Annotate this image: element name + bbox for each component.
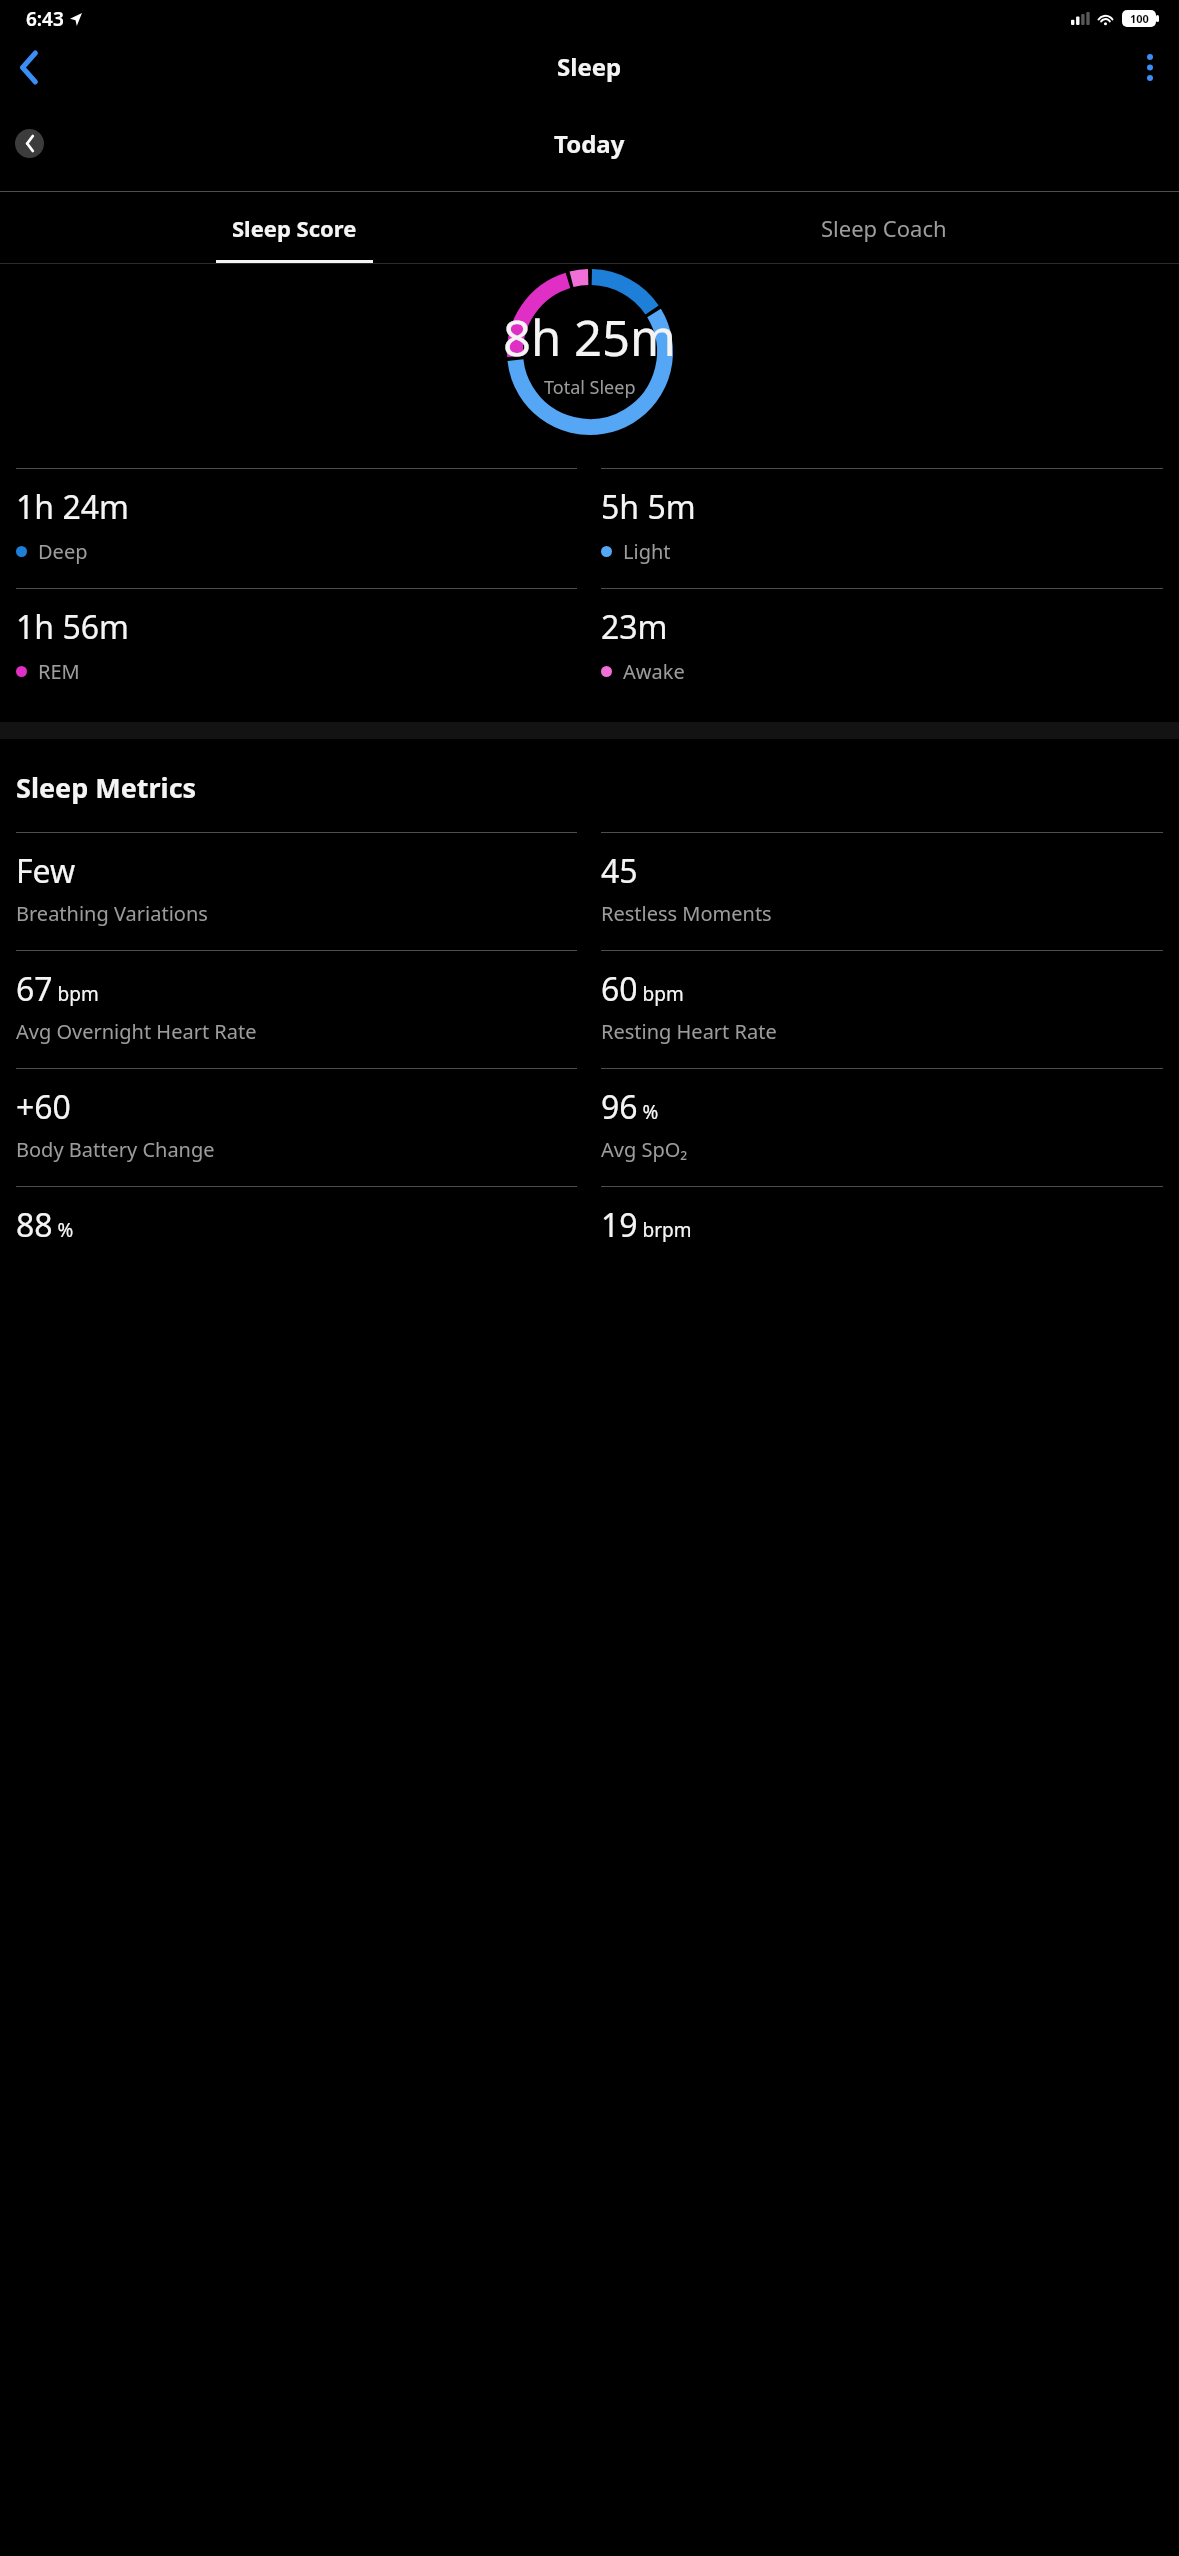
staticText: Breathing Variations: [16, 900, 208, 927]
button[interactable]: Few: [16, 832, 577, 950]
button[interactable]: 60 bpm: [601, 950, 1163, 1068]
staticText: 1h 56m: [16, 605, 129, 649]
staticText: Avg Overnight Heart Rate: [16, 1018, 257, 1045]
staticText: Few: [16, 849, 76, 893]
staticText: Sleep Metrics: [16, 769, 197, 806]
staticText: Light: [623, 538, 671, 565]
button[interactable]: 1h 56m: [16, 588, 577, 708]
staticText: Resting Heart Rate: [601, 1018, 777, 1045]
staticText: Restless Moments: [601, 900, 772, 927]
staticText: 1h 24m: [16, 485, 129, 529]
staticText: Today: [554, 127, 625, 160]
button[interactable]: Back: [0, 38, 58, 96]
staticText: 67 bpm: [16, 967, 99, 1011]
button[interactable]: 96 %: [601, 1068, 1163, 1186]
staticText: 88 %: [16, 1203, 74, 1247]
button[interactable]: 88 %: [16, 1186, 577, 1270]
button[interactable]: Previous day: [15, 129, 44, 158]
button[interactable]: More options: [1121, 38, 1179, 96]
staticText: +60: [16, 1085, 71, 1129]
button[interactable]: 45: [601, 832, 1163, 950]
staticText: 45: [601, 849, 638, 893]
staticText: Deep: [38, 538, 88, 565]
staticText: 96 %: [601, 1085, 659, 1129]
staticText: 5h 5m: [601, 485, 696, 529]
staticText: Sleep: [557, 50, 622, 83]
staticText: Body Battery Change: [16, 1136, 215, 1163]
staticText: 23m: [601, 605, 668, 649]
staticText: 100: [1130, 11, 1149, 26]
button[interactable]: Sleep Score: [0, 192, 589, 263]
staticText: Awake: [623, 658, 685, 685]
staticText: Total Sleep: [544, 375, 636, 400]
button[interactable]: 67 bpm: [16, 950, 577, 1068]
button[interactable]: +60: [16, 1068, 577, 1186]
button[interactable]: Sleep Coach: [589, 192, 1179, 263]
staticText: Sleep Coach: [821, 213, 947, 243]
button[interactable]: 19 brpm: [601, 1186, 1163, 1270]
staticText: Avg SpO₂: [601, 1136, 688, 1163]
staticText: Sleep Score: [232, 213, 357, 243]
button[interactable]: 5h 5m: [601, 468, 1163, 588]
button[interactable]: 23m: [601, 588, 1163, 708]
staticText: REM: [38, 658, 80, 685]
staticText: 60 bpm: [601, 967, 684, 1011]
staticText: 8h 25m: [503, 304, 676, 371]
staticText: 6:43: [26, 6, 64, 32]
button[interactable]: 1h 24m: [16, 468, 577, 588]
staticText: 19 brpm: [601, 1203, 692, 1247]
